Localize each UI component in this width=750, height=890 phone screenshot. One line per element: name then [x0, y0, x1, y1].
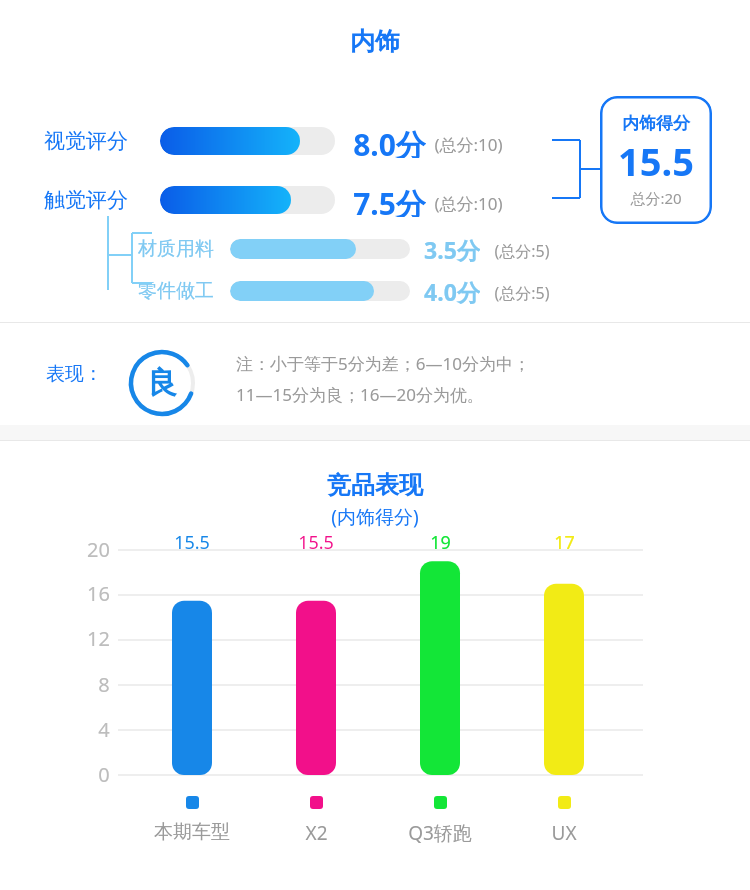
- staticText: 总分:20: [630, 188, 682, 208]
- button[interactable]: UX: [504, 820, 624, 846]
- button[interactable]: Q3轿跑: [380, 820, 500, 846]
- staticText: 20: [87, 536, 110, 563]
- staticText: 16: [87, 580, 110, 607]
- staticText: (总分:5): [494, 240, 550, 262]
- staticText: 良: [147, 364, 177, 402]
- button[interactable]: 材质用料: [0, 234, 750, 264]
- staticText: X2: [305, 820, 328, 846]
- staticText: 15.5: [174, 530, 210, 555]
- staticText: 4.0分: [424, 276, 480, 306]
- staticText: 8.0分: [353, 124, 426, 158]
- staticText: 15.5: [618, 135, 694, 187]
- staticText: 12: [87, 625, 110, 652]
- button[interactable]: X2: [256, 820, 376, 846]
- staticText: 11—15分为良；16—20分为优。: [236, 383, 484, 406]
- staticText: 17: [554, 530, 575, 555]
- button[interactable]: 表现：: [46, 362, 103, 386]
- staticText: 材质用料: [138, 237, 214, 261]
- staticText: 0: [98, 761, 110, 788]
- staticText: 内饰: [350, 26, 400, 57]
- staticText: 表现：: [46, 362, 103, 386]
- button[interactable]: 本期车型: [132, 820, 252, 844]
- staticText: 7.5分: [353, 183, 426, 217]
- staticText: (总分:5): [494, 282, 550, 304]
- staticText: Q3轿跑: [408, 820, 472, 846]
- staticText: 19: [430, 530, 451, 555]
- button[interactable]: 内饰得分: [600, 96, 712, 224]
- staticText: 8: [98, 671, 110, 698]
- staticText: 15.5: [298, 530, 334, 555]
- button[interactable]: 零件做工: [0, 276, 750, 306]
- staticText: 触觉评分: [44, 187, 128, 213]
- button[interactable]: 表现良: [129, 350, 195, 416]
- staticText: 本期车型: [154, 820, 230, 844]
- button[interactable]: 内饰: [0, 26, 750, 57]
- staticText: 注：小于等于5分为差；6—10分为中；: [236, 352, 530, 375]
- button[interactable]: 竞品表现: [0, 470, 750, 500]
- staticText: (总分:10): [434, 192, 503, 215]
- button[interactable]: 视觉评分: [0, 124, 750, 158]
- staticText: 竞品表现: [327, 470, 423, 500]
- staticText: (内饰得分): [331, 504, 419, 530]
- staticText: 内饰得分: [622, 113, 690, 134]
- staticText: 视觉评分: [44, 128, 128, 154]
- staticText: 3.5分: [424, 234, 480, 264]
- staticText: 4: [98, 716, 110, 743]
- staticText: UX: [551, 820, 577, 846]
- staticText: 零件做工: [138, 279, 214, 303]
- staticText: (总分:10): [434, 133, 503, 156]
- button[interactable]: 触觉评分: [0, 183, 750, 217]
